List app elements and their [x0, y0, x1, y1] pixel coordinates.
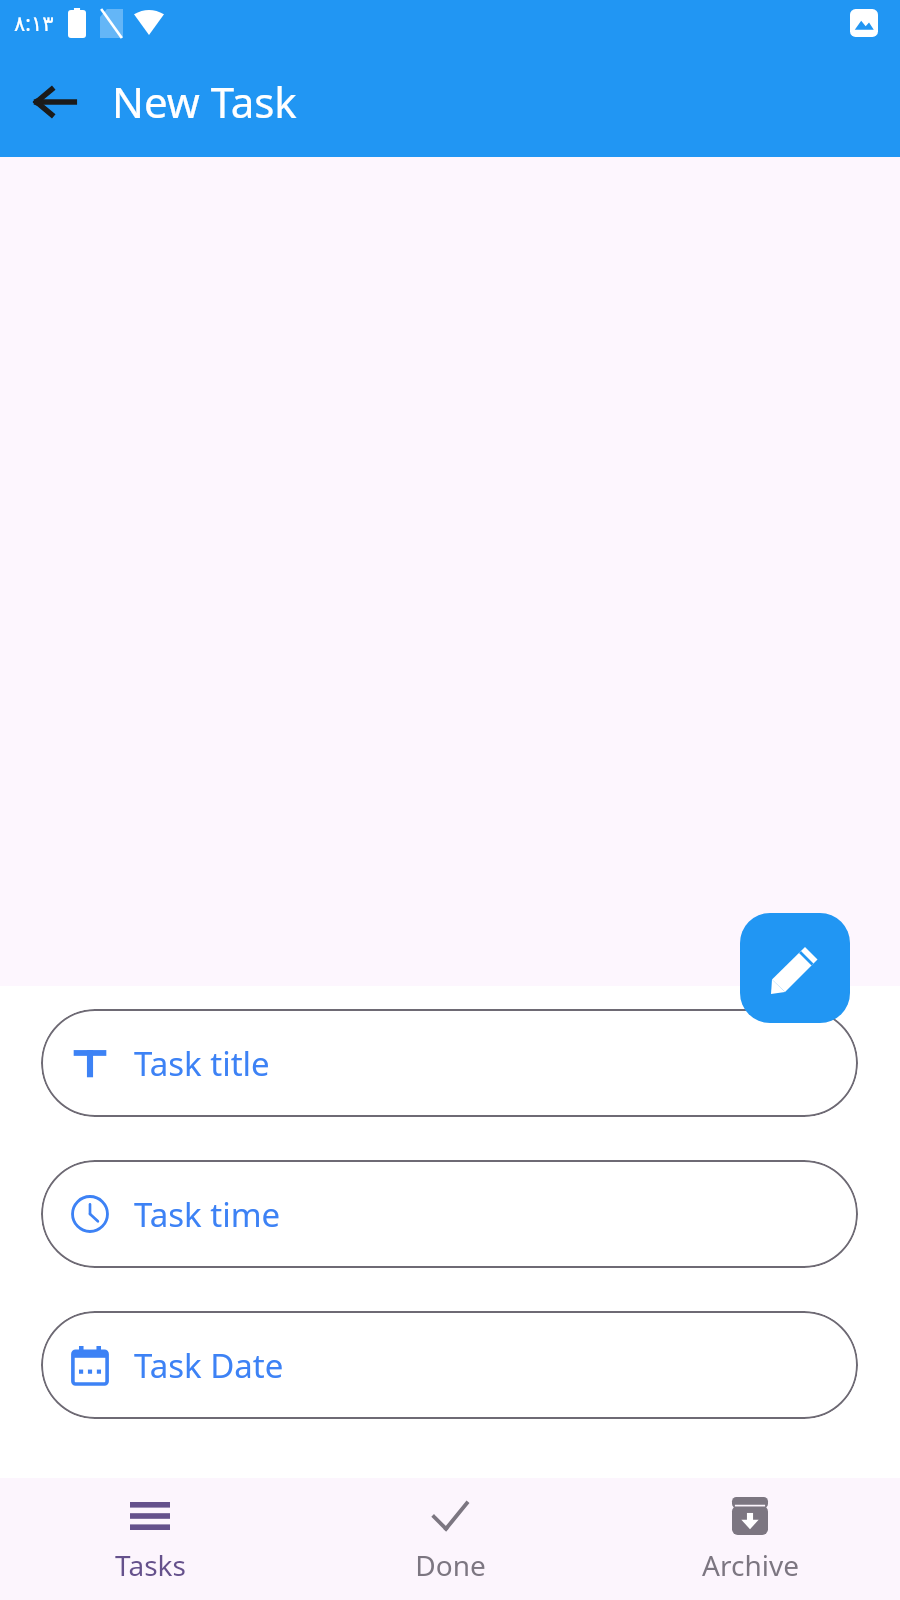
button[interactable]: Back [22, 69, 88, 135]
button[interactable]: Task title [41, 1009, 858, 1117]
button[interactable]: Done [300, 1478, 600, 1600]
staticText: ٨:١٣ [14, 9, 54, 38]
button[interactable]: Edit task [740, 913, 850, 1023]
staticText: Task title [134, 1041, 270, 1086]
staticText: New Task [112, 73, 297, 130]
staticText: Task time [134, 1192, 281, 1237]
staticText: Done [415, 1546, 486, 1584]
button[interactable]: Task time [41, 1160, 858, 1268]
staticText: Tasks [115, 1546, 186, 1584]
button[interactable]: Archive [600, 1478, 900, 1600]
staticText: Archive [702, 1546, 799, 1584]
button[interactable]: Tasks [0, 1478, 300, 1600]
staticText: Task Date [134, 1343, 284, 1388]
button[interactable]: Task Date [41, 1311, 858, 1419]
